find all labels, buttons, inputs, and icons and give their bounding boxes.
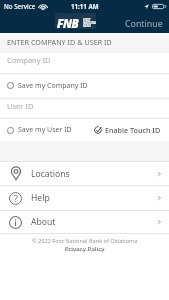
staticText: Help xyxy=(31,192,50,204)
staticText: Save my User ID xyxy=(18,125,72,135)
button[interactable]: Privacy Policy xyxy=(65,244,105,252)
button[interactable]: Save my User ID xyxy=(0,119,78,141)
staticText: No Service xyxy=(4,2,36,10)
staticText: NATIONAL xyxy=(83,21,96,24)
staticText: FIRST xyxy=(83,18,91,21)
staticText: Save my Company ID xyxy=(18,81,88,91)
staticText: © 2022 First National Bank of Oklahoma xyxy=(32,237,138,245)
staticText: BANK xyxy=(83,24,91,27)
staticText: About xyxy=(31,216,56,228)
staticText: Company ID xyxy=(7,55,51,65)
button[interactable]: User ID field xyxy=(0,100,169,118)
button[interactable]: Continue xyxy=(125,18,163,30)
button[interactable]: About xyxy=(0,211,169,233)
staticText: Continue xyxy=(125,18,163,30)
staticText: Enable Touch ID xyxy=(105,125,161,135)
button[interactable]: Locations xyxy=(0,162,169,185)
button[interactable]: First National Bank of Oklahoma xyxy=(55,13,96,29)
button[interactable]: ? xyxy=(0,186,169,210)
button[interactable]: Save my Company ID xyxy=(0,74,169,97)
staticText: ENTER COMPANY ID & USER ID xyxy=(7,37,112,47)
staticText: FNB xyxy=(57,16,79,29)
staticText: Privacy Policy xyxy=(65,244,105,252)
staticText: User ID xyxy=(7,101,34,111)
button[interactable]: Company ID field xyxy=(0,53,169,73)
button[interactable]: Enable Touch ID xyxy=(88,119,169,141)
staticText: ? xyxy=(14,193,18,205)
staticText: 11:11 AM xyxy=(71,2,99,10)
staticText: Locations xyxy=(31,168,70,180)
